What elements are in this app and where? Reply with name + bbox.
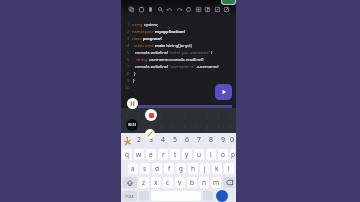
button[interactable]: t <box>170 149 180 160</box>
staticText: static void <box>132 43 155 48</box>
staticText: ?123 <box>125 194 134 199</box>
button[interactable]: Format <box>184 5 192 13</box>
staticText: string <box>136 57 149 62</box>
staticText: c <box>166 178 170 187</box>
staticText: 2 <box>137 135 142 145</box>
button[interactable]: p <box>230 149 235 160</box>
staticText: class <box>132 36 143 41</box>
button[interactable]: 8 <box>205 133 217 147</box>
button[interactable]: Draw <box>145 129 155 139</box>
staticText: i <box>210 150 212 159</box>
staticText: p <box>231 150 235 159</box>
button[interactable]: c <box>163 177 173 188</box>
staticText: 9 <box>127 78 130 83</box>
staticText: d <box>155 164 159 173</box>
button[interactable]: v <box>175 177 185 188</box>
button[interactable]: Copy <box>127 5 135 13</box>
button[interactable]: Redo <box>175 5 183 13</box>
button[interactable]: g <box>176 163 186 174</box>
button[interactable]: 5 <box>169 133 181 147</box>
staticText: 2 <box>127 29 130 34</box>
button[interactable]: Delete <box>146 5 154 13</box>
button[interactable]: i <box>206 149 216 160</box>
button[interactable]: 9 <box>217 133 229 147</box>
staticText: 10 <box>125 85 130 90</box>
button[interactable]: 3 <box>145 133 157 147</box>
staticText: x <box>154 178 158 187</box>
staticText: "username is" <box>169 64 196 69</box>
staticText: +username) <box>196 64 219 69</box>
button[interactable]: f <box>164 163 174 174</box>
button[interactable]: k <box>212 163 222 174</box>
button[interactable]: Enter <box>216 190 228 202</box>
staticText: h <box>191 164 196 173</box>
staticText: 6 <box>185 135 190 145</box>
staticText: main <box>155 43 166 48</box>
button[interactable]: s <box>140 163 150 174</box>
button[interactable]: 1 <box>121 133 133 147</box>
staticText: s <box>143 164 147 173</box>
staticText: myapplication{ <box>155 29 186 34</box>
button[interactable]: r <box>158 149 168 160</box>
button[interactable]: Share <box>222 5 230 13</box>
button[interactable]: 2 <box>133 133 145 147</box>
button[interactable]: y <box>182 149 192 160</box>
button[interactable]: b <box>187 177 197 188</box>
staticText: 3 <box>127 36 130 41</box>
button[interactable]: w <box>134 149 144 160</box>
staticText: 5 <box>127 50 130 55</box>
button[interactable]: Paste <box>137 5 145 13</box>
button[interactable]: 0 <box>229 133 236 147</box>
staticText: 1 <box>125 135 130 145</box>
button[interactable]: q <box>122 149 132 160</box>
button[interactable]: 4 <box>157 133 169 147</box>
button[interactable]: Stop recording <box>145 109 157 121</box>
button[interactable]: x <box>151 177 161 188</box>
button[interactable]: Search <box>156 5 164 13</box>
button[interactable]: Run <box>215 84 232 100</box>
button[interactable]: m <box>211 177 221 188</box>
button[interactable]: 6 <box>181 133 193 147</box>
button[interactable]: 7 <box>193 133 205 147</box>
staticText: } <box>132 78 135 83</box>
staticText: namespace <box>132 29 155 34</box>
staticText: using <box>132 22 144 27</box>
button[interactable]: u <box>194 149 204 160</box>
button[interactable]: Layout <box>203 5 211 13</box>
button[interactable]: Pause <box>127 98 138 109</box>
staticText: z <box>142 178 146 187</box>
button[interactable]: Split <box>194 5 202 13</box>
staticText: u <box>197 150 202 159</box>
staticText: system; <box>144 22 159 27</box>
button[interactable]: Symbols <box>122 191 137 201</box>
staticText: w <box>136 150 142 159</box>
button[interactable]: e <box>146 149 156 160</box>
button[interactable]: Shift <box>122 177 137 188</box>
staticText: 4 <box>161 135 166 145</box>
button[interactable]: z <box>139 177 149 188</box>
staticText: 0 <box>230 135 235 145</box>
button[interactable]: h <box>188 163 198 174</box>
staticText: ) <box>211 50 213 55</box>
staticText: y <box>185 150 189 159</box>
staticText: 8 <box>209 135 214 145</box>
button[interactable]: Backspace <box>223 177 235 188</box>
button[interactable]: l <box>224 163 234 174</box>
button[interactable]: Undo <box>165 5 173 13</box>
staticText: } <box>132 71 136 76</box>
button[interactable]: d <box>152 163 162 174</box>
button[interactable]: j <box>200 163 210 174</box>
staticText: j <box>204 164 206 173</box>
button[interactable]: o <box>218 149 228 160</box>
button[interactable]: n <box>199 177 209 188</box>
staticText: m <box>213 178 220 187</box>
button[interactable]: a <box>128 163 138 174</box>
button[interactable]: Preview <box>213 5 221 13</box>
staticText: q <box>125 150 129 159</box>
staticText: console.writeline( <box>132 64 169 69</box>
staticText: o <box>221 150 225 159</box>
button[interactable]: Recording timer <box>126 119 138 131</box>
